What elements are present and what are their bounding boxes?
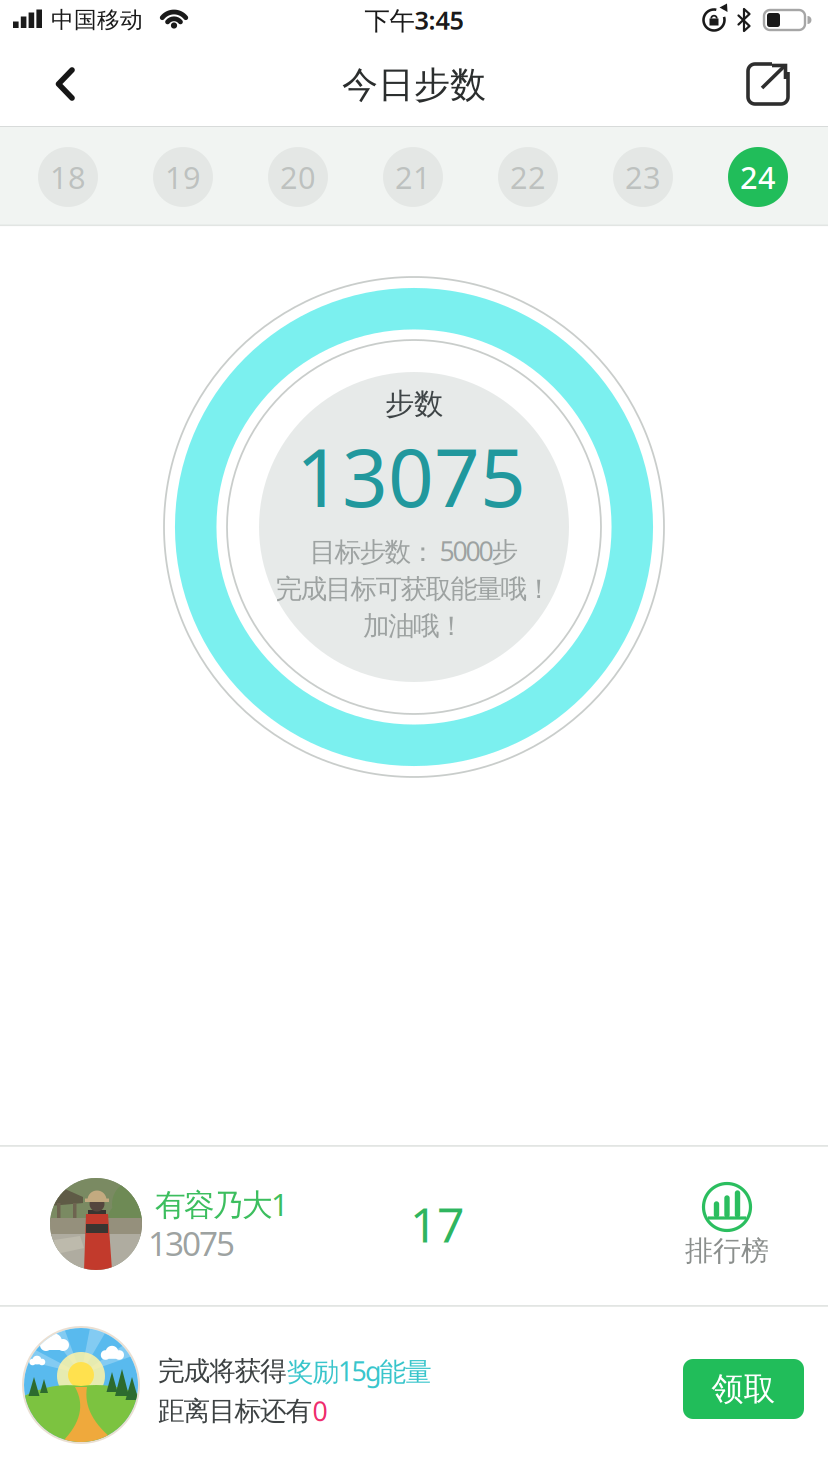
staticText: 排行榜 — [685, 1234, 769, 1268]
staticText: 距离目标还有 — [158, 1395, 312, 1427]
staticText: 加油哦！ — [363, 610, 465, 642]
staticText: 13075 — [296, 423, 526, 529]
button[interactable]: 20 — [268, 147, 328, 207]
staticText: 13075 — [148, 1221, 235, 1265]
staticText: 今日步数 — [342, 63, 486, 107]
button[interactable]: 排行榜 — [672, 1177, 782, 1277]
staticText: 中国移动 — [51, 6, 143, 34]
staticText: 领取 — [711, 1369, 775, 1409]
staticText: 24 — [740, 157, 776, 197]
staticText: 完成目标可获取能量哦！ — [275, 573, 552, 605]
staticText: 目标步数： 5000步 — [309, 533, 518, 569]
staticText: 步数 — [385, 386, 443, 422]
button[interactable]: 19 — [153, 147, 213, 207]
staticText: 19 — [165, 157, 201, 197]
button[interactable]: 领取 — [683, 1359, 804, 1419]
button[interactable]: 18 — [38, 147, 98, 207]
button[interactable]: 24 — [728, 147, 788, 207]
button[interactable]: 23 — [613, 147, 673, 207]
staticText: 17 — [410, 1192, 464, 1256]
staticText: 21 — [395, 157, 431, 197]
staticText: 完成将获得 — [158, 1355, 287, 1387]
staticText: 0 — [312, 1393, 327, 1429]
staticText: 22 — [510, 157, 546, 197]
staticText: 奖励15g能量 — [287, 1353, 432, 1389]
button[interactable]: Back — [42, 42, 88, 126]
staticText: 下午3:45 — [364, 3, 463, 37]
button[interactable]: 22 — [498, 147, 558, 207]
staticText: 20 — [280, 157, 316, 197]
staticText: 18 — [50, 157, 86, 197]
button[interactable]: 21 — [383, 147, 443, 207]
button[interactable]: Share — [744, 56, 792, 112]
staticText: 23 — [625, 157, 661, 197]
staticText: 有容乃大1 — [155, 1184, 289, 1224]
